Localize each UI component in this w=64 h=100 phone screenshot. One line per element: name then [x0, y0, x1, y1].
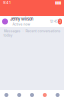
staticText: Jenny Wilson: [10, 17, 33, 21]
staticText: 3: [59, 20, 61, 23]
staticText: 12:45: [50, 20, 58, 23]
staticText: Messages · Recent conversations today: [3, 29, 60, 37]
staticText: Active now: [12, 22, 30, 26]
staticText: 9:41: [3, 0, 11, 5]
staticText: ▮▮▮: [55, 0, 61, 5]
